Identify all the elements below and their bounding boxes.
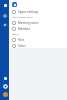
staticText: ABOUT (12, 33, 19, 36)
staticText: Tasks (18, 44, 26, 48)
button[interactable]: Meeting notes (9, 20, 67, 26)
staticText: Member (18, 27, 30, 31)
button[interactable]: Files (9, 37, 67, 43)
button[interactable]: Account (2, 91, 8, 97)
staticText: Files (18, 38, 25, 42)
button[interactable]: Tasks (9, 43, 67, 48)
button[interactable]: Logo (2, 2, 8, 8)
button[interactable]: Add (2, 22, 8, 28)
staticText: MAIL NOTIFICATIONS (12, 16, 33, 19)
button[interactable]: Search (2, 13, 8, 19)
staticText: Space settings (18, 10, 39, 14)
button[interactable]: Member (9, 26, 67, 32)
button[interactable]: Apps (2, 75, 8, 81)
staticText: Meeting notes (18, 21, 39, 25)
button[interactable]: Settings (2, 83, 8, 89)
button[interactable]: Space settings (9, 9, 67, 15)
button[interactable]: App icon (12, 2, 17, 7)
